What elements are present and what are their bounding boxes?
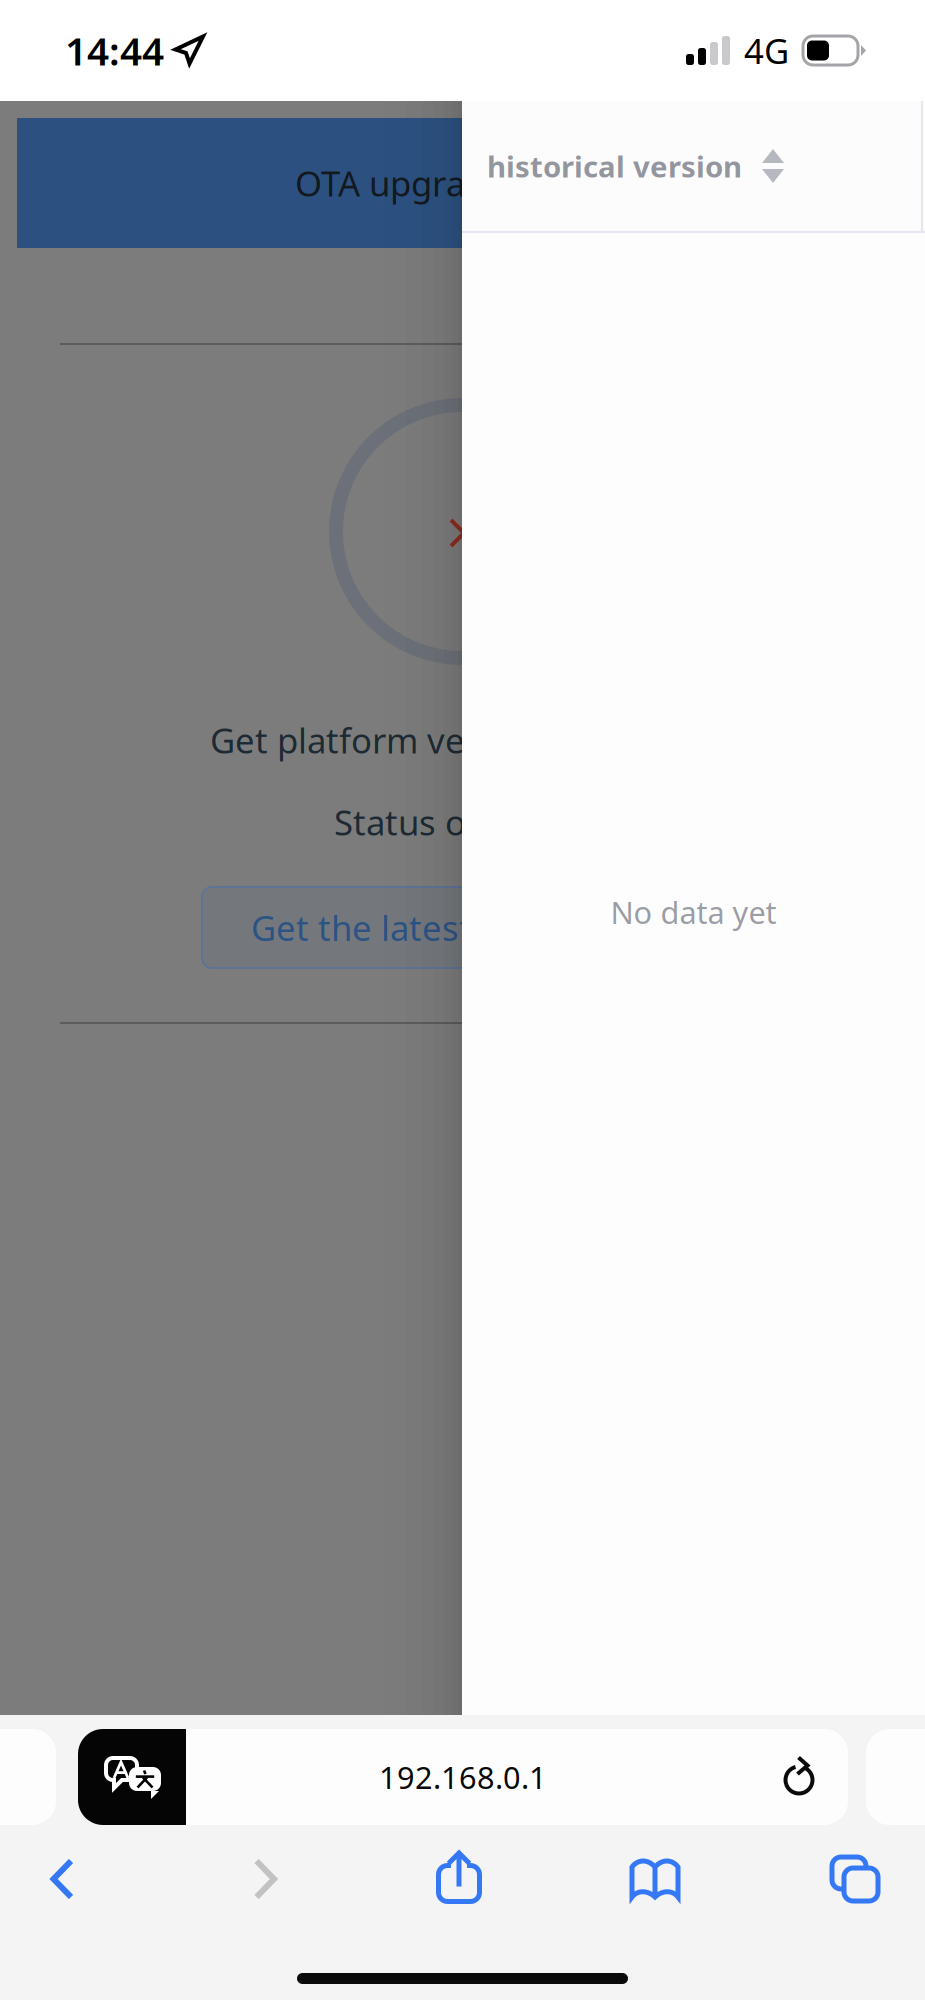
button[interactable]: Back — [7, 1833, 117, 1925]
button[interactable]: Translate — [78, 1729, 186, 1825]
staticText: 192.168.0.1 — [379, 1757, 547, 1797]
button[interactable]: Forward — [210, 1833, 320, 1925]
button[interactable]: 192.168.0.1 — [78, 1729, 848, 1825]
button[interactable]: Tabs — [800, 1833, 910, 1925]
staticText: Get platform version: unknown — [210, 717, 715, 763]
staticText: Status of device — [334, 799, 591, 845]
staticText: OTA upgrade service — [295, 160, 630, 206]
staticText: Get the latest version info — [251, 904, 673, 950]
button[interactable]: Bookmarks — [600, 1833, 710, 1925]
staticText: No data yet — [610, 892, 776, 932]
staticText: 4G — [744, 27, 789, 73]
button[interactable]: Share — [404, 1831, 514, 1923]
staticText: 14:44 — [65, 25, 164, 76]
button[interactable]: historical version — [462, 101, 923, 231]
staticText: historical version — [487, 146, 742, 185]
